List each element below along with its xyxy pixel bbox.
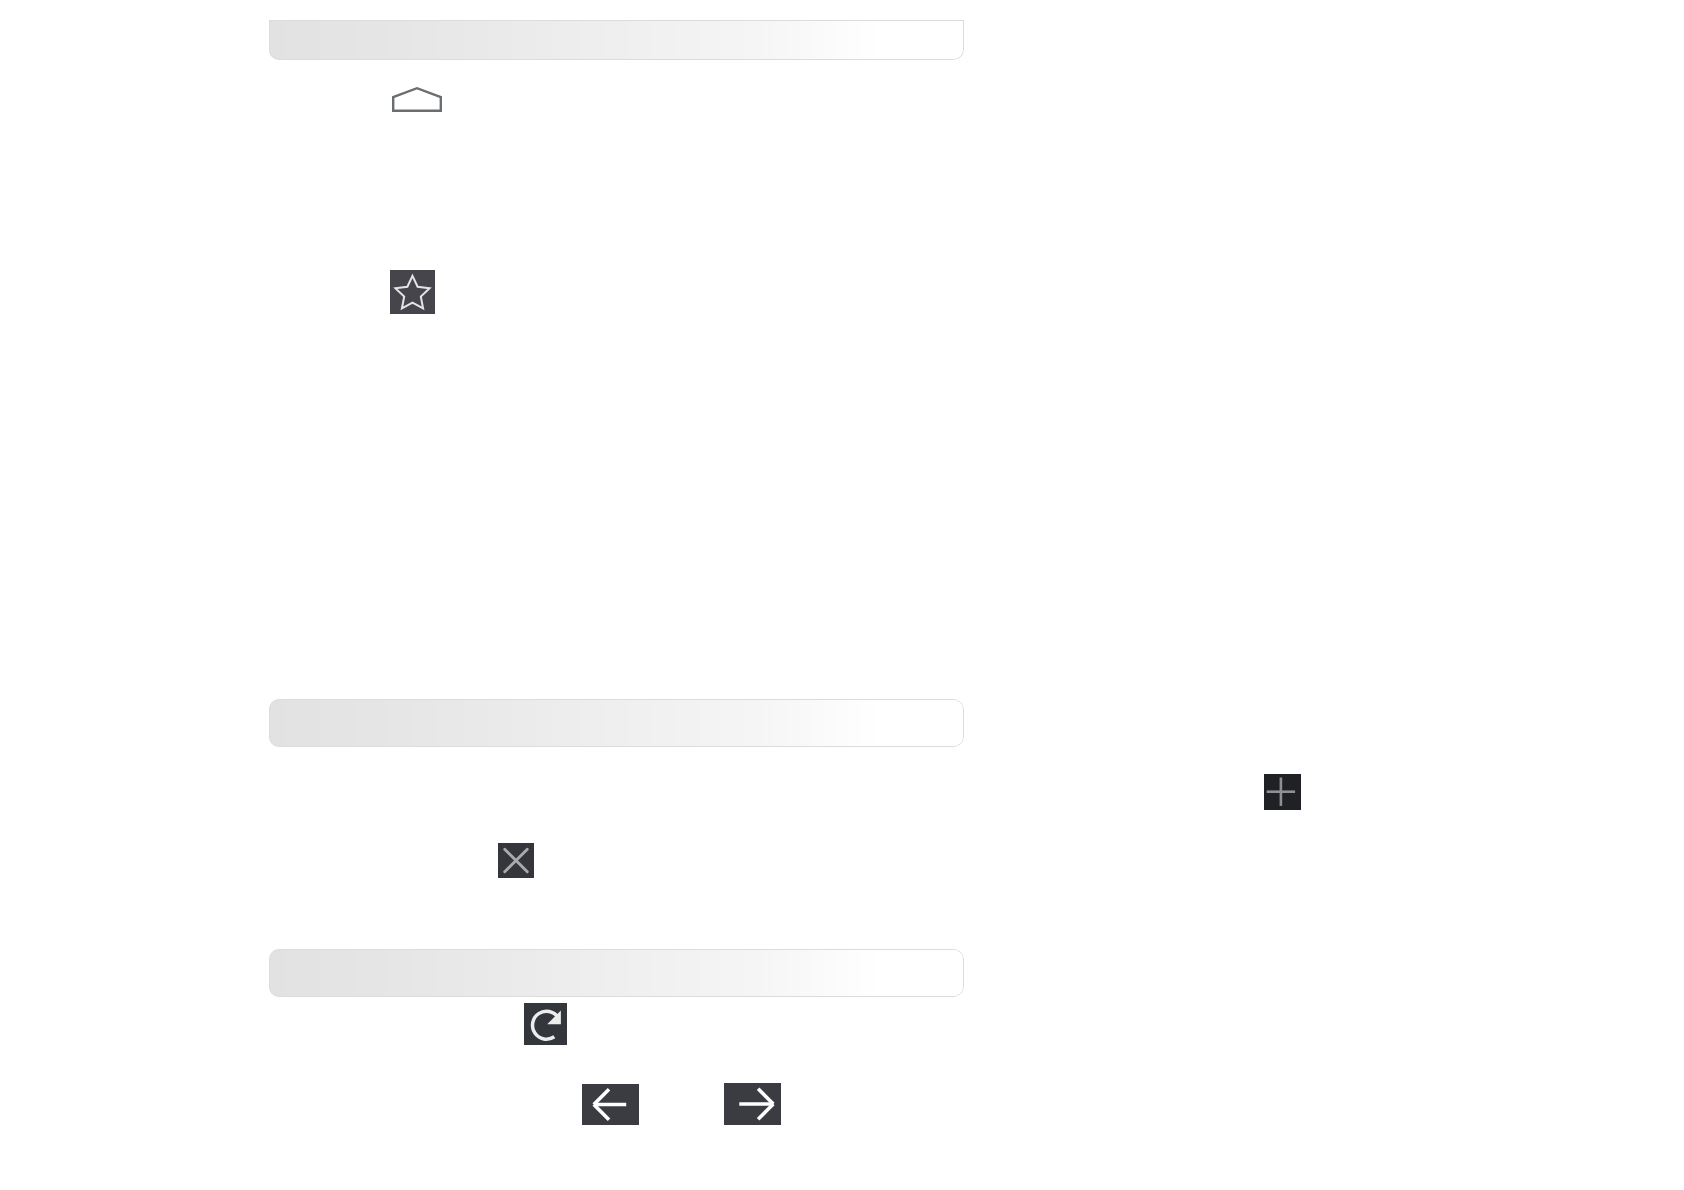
- button[interactable]: Favorite: [390, 270, 435, 314]
- button[interactable]: Home: [392, 87, 442, 112]
- button[interactable]: Back: [582, 1084, 639, 1125]
- button[interactable]: Forward: [724, 1083, 781, 1125]
- button[interactable]: Add: [1264, 774, 1301, 810]
- button[interactable]: Reload: [524, 1003, 567, 1045]
- button[interactable]: [269, 20, 964, 60]
- button[interactable]: [269, 949, 964, 997]
- button[interactable]: Close: [498, 843, 534, 878]
- button[interactable]: [269, 699, 964, 747]
